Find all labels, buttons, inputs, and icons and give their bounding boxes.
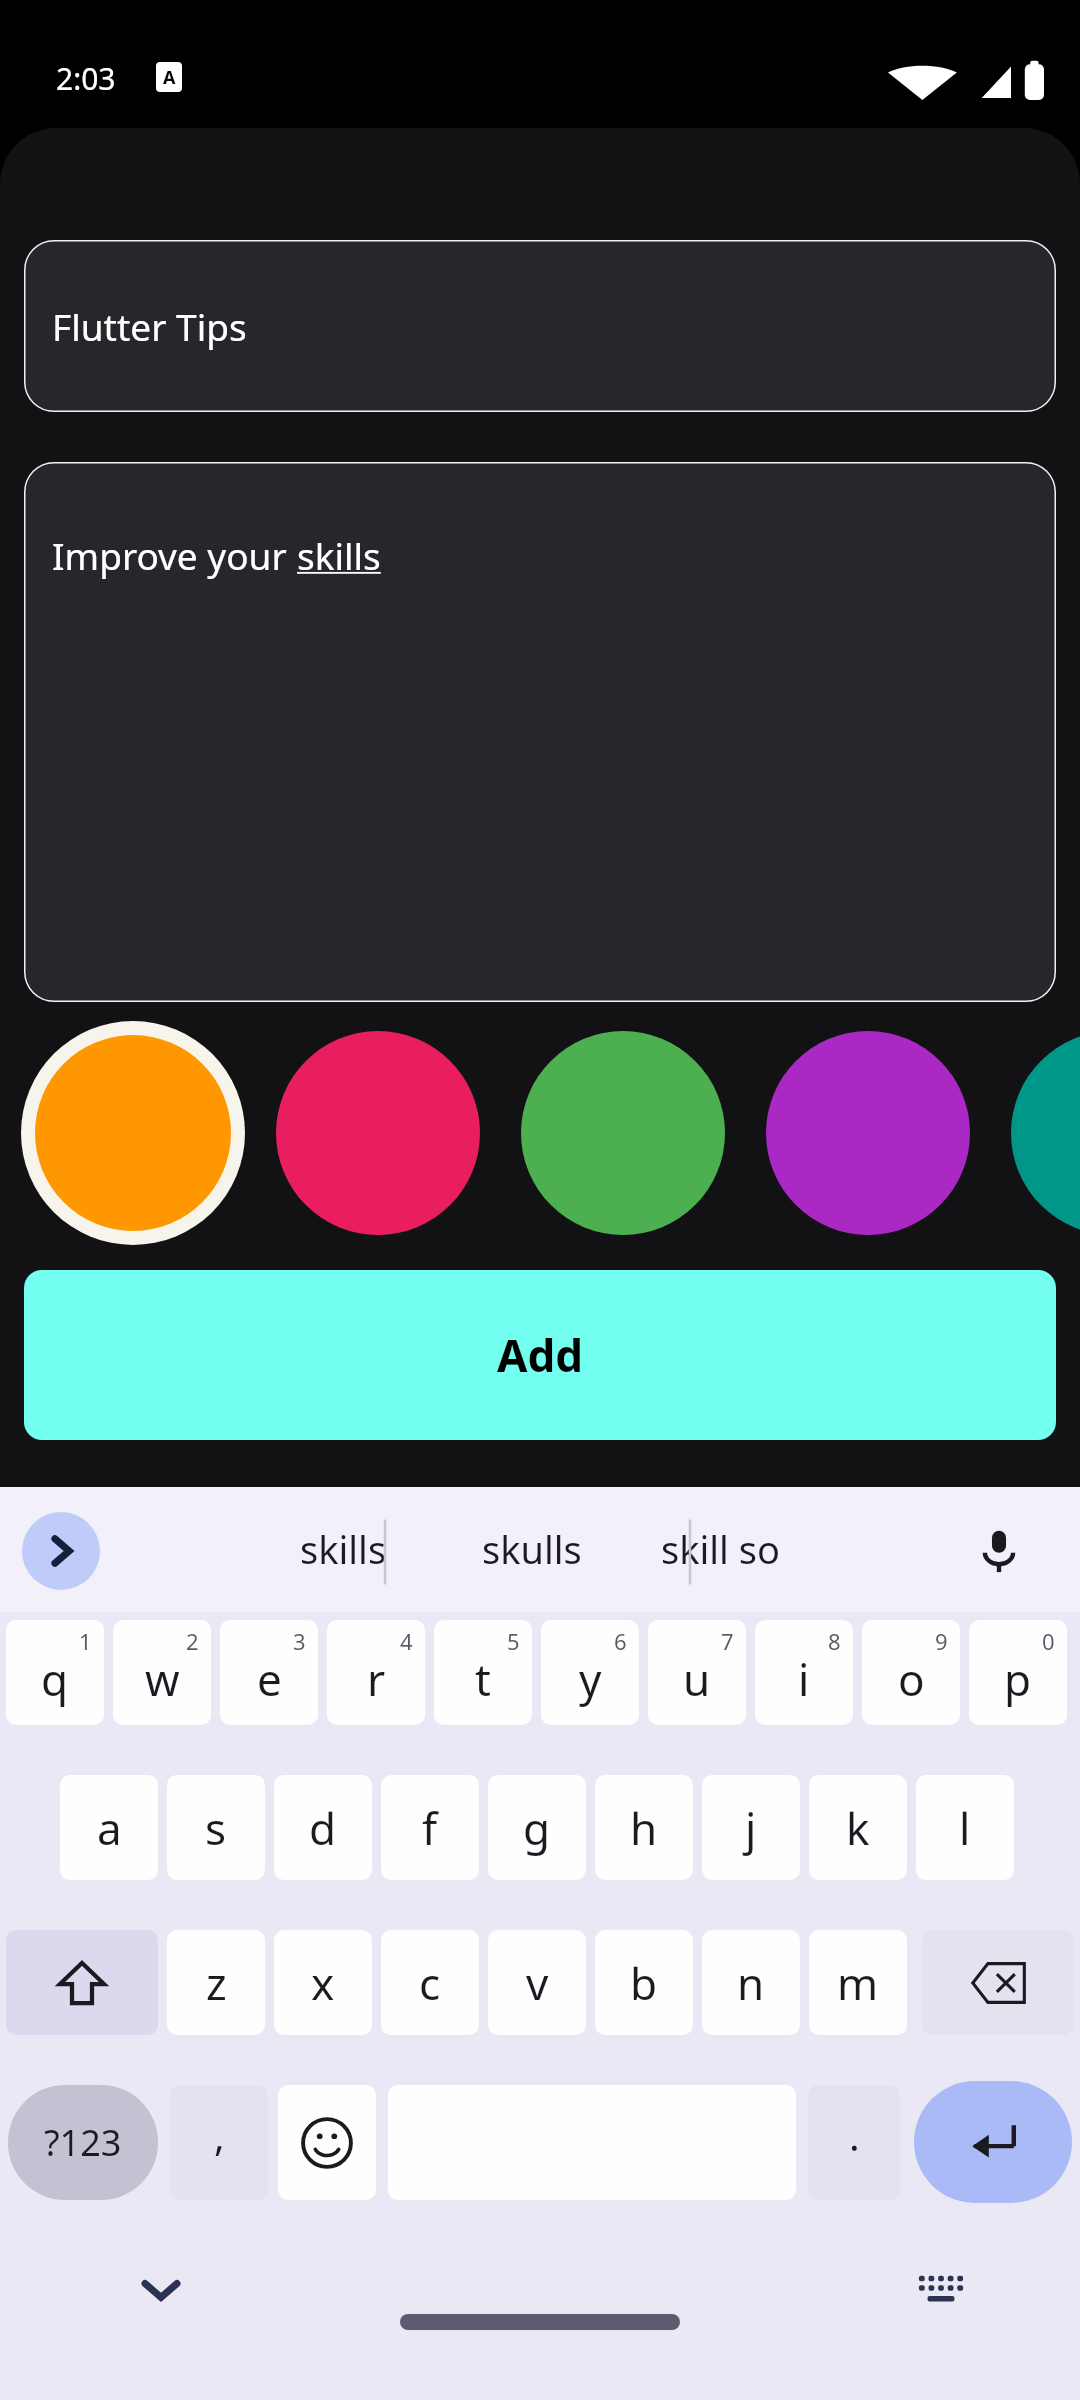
button[interactable]: Colour swatch: [766, 1031, 970, 1235]
staticText: v: [526, 1953, 549, 2013]
button[interactable]: k: [809, 1775, 907, 1880]
staticText: q: [41, 1649, 69, 1709]
button[interactable]: a: [60, 1775, 158, 1880]
button[interactable]: f: [381, 1775, 479, 1880]
staticText: b: [630, 1953, 658, 2013]
button[interactable]: j: [702, 1775, 800, 1880]
staticText: i: [798, 1649, 810, 1709]
button[interactable]: o: [862, 1620, 960, 1725]
staticText: t: [475, 1649, 491, 1709]
staticText: Flutter Tips: [52, 301, 247, 351]
button[interactable]: Add: [24, 1270, 1056, 1440]
staticText: p: [1004, 1649, 1032, 1709]
button[interactable]: n: [702, 1930, 800, 2035]
staticText: w: [145, 1649, 180, 1709]
button[interactable]: p: [969, 1620, 1067, 1725]
staticText: Add: [497, 1325, 584, 1385]
staticText: 5: [507, 1626, 520, 1656]
button[interactable]: .: [808, 2085, 900, 2200]
staticText: k: [846, 1798, 870, 1858]
button[interactable]: Flutter Tips: [24, 240, 1056, 412]
button[interactable]: Emoji: [278, 2085, 376, 2200]
button[interactable]: Colour swatch: [276, 1031, 480, 1235]
button[interactable]: Colour swatch: [521, 1031, 725, 1235]
button[interactable]: s: [167, 1775, 265, 1880]
staticText: d: [309, 1798, 337, 1858]
staticText: 2:03: [56, 58, 116, 99]
button[interactable]: u: [648, 1620, 746, 1725]
button[interactable]: b: [595, 1930, 693, 2035]
staticText: 9: [935, 1626, 948, 1656]
button[interactable]: t: [434, 1620, 532, 1725]
button[interactable]: c: [381, 1930, 479, 2035]
staticText: r: [367, 1649, 386, 1709]
staticText: 2: [186, 1626, 199, 1656]
button[interactable]: q: [6, 1620, 104, 1725]
staticText: h: [630, 1798, 658, 1858]
button[interactable]: i: [755, 1620, 853, 1725]
staticText: 8: [828, 1626, 841, 1656]
staticText: skills: [300, 1523, 387, 1575]
staticText: y: [579, 1649, 602, 1709]
staticText: l: [959, 1798, 971, 1858]
staticText: a: [97, 1798, 122, 1858]
button[interactable]: l: [916, 1775, 1014, 1880]
staticText: 4: [400, 1626, 413, 1656]
button[interactable]: Switch keyboard: [898, 2247, 984, 2333]
button[interactable]: skulls: [437, 1495, 627, 1603]
staticText: .: [849, 2108, 860, 2162]
button[interactable]: z: [167, 1930, 265, 2035]
button[interactable]: Hide keyboard: [118, 2247, 204, 2333]
button[interactable]: Enter: [914, 2081, 1072, 2203]
button[interactable]: w: [113, 1620, 211, 1725]
staticText: u: [683, 1649, 711, 1709]
button[interactable]: ,: [170, 2085, 268, 2200]
staticText: skills: [297, 530, 381, 580]
staticText: 3: [293, 1626, 306, 1656]
button[interactable]: r: [327, 1620, 425, 1725]
staticText: c: [419, 1953, 441, 2013]
button[interactable]: skill so: [625, 1495, 815, 1603]
staticText: Improve your: [52, 530, 297, 580]
button[interactable]: d: [274, 1775, 372, 1880]
staticText: n: [737, 1953, 765, 2013]
button[interactable]: h: [595, 1775, 693, 1880]
button[interactable]: skills: [248, 1495, 438, 1603]
staticText: 6: [614, 1626, 627, 1656]
staticText: z: [206, 1953, 227, 2013]
staticText: ?123: [44, 2118, 122, 2167]
staticText: x: [311, 1953, 335, 2013]
button[interactable]: v: [488, 1930, 586, 2035]
staticText: 1: [79, 1626, 92, 1656]
staticText: ,: [214, 2108, 225, 2162]
staticText: e: [257, 1649, 282, 1709]
button[interactable]: g: [488, 1775, 586, 1880]
button[interactable]: ?123: [8, 2085, 158, 2200]
button[interactable]: Voice input: [960, 1512, 1038, 1590]
staticText: f: [422, 1798, 438, 1858]
button[interactable]: Shift: [6, 1930, 158, 2035]
staticText: m: [837, 1953, 879, 2013]
button[interactable]: Improve your: [24, 462, 1056, 1002]
staticText: o: [898, 1649, 925, 1709]
staticText: g: [523, 1798, 551, 1858]
staticText: j: [745, 1798, 757, 1858]
staticText: 0: [1042, 1626, 1055, 1656]
button[interactable]: Backspace: [922, 1930, 1074, 2035]
staticText: 7: [721, 1626, 734, 1656]
button[interactable]: m: [809, 1930, 907, 2035]
staticText: skill so: [661, 1523, 780, 1575]
button[interactable]: x: [274, 1930, 372, 2035]
button[interactable]: Orange colour: [21, 1021, 245, 1245]
button[interactable]: More suggestions: [22, 1512, 100, 1590]
staticText: A: [163, 65, 176, 90]
button[interactable]: e: [220, 1620, 318, 1725]
staticText: skulls: [482, 1523, 582, 1575]
button[interactable]: Colour swatch: [1011, 1031, 1080, 1235]
staticText: s: [205, 1798, 227, 1858]
button[interactable]: y: [541, 1620, 639, 1725]
